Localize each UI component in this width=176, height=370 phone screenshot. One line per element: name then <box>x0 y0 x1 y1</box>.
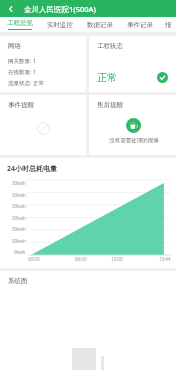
button[interactable]: 事件记录 <box>120 17 160 32</box>
staticText: 00:00 <box>28 256 40 262</box>
staticText: 事件提醒 <box>8 101 34 109</box>
staticText: 12:00 <box>111 256 123 262</box>
staticText: 流量状态: 正常 <box>8 79 44 87</box>
staticText: 事件记录 <box>127 21 153 29</box>
staticText: 30kwh <box>12 226 26 232</box>
staticText: 30kwh <box>12 192 26 198</box>
staticText: 15:44 <box>159 256 171 262</box>
staticText: 06:00 <box>75 256 87 262</box>
staticText: 正常 <box>97 71 117 84</box>
staticText: 没有需要处理的报修 <box>109 137 159 144</box>
button[interactable]: 网络 <box>0 36 86 92</box>
staticText: 30kwh <box>12 215 26 221</box>
staticText: 售后提醒 <box>97 101 123 109</box>
button[interactable]: 事件提醒 <box>0 95 86 155</box>
staticText: 在线数量: 1 <box>8 68 37 76</box>
staticText: 24小时总耗电量 <box>7 164 58 174</box>
button[interactable]: 工程总览 <box>0 17 40 32</box>
button[interactable]: Back <box>0 0 22 17</box>
staticText: 数据记录 <box>87 21 113 29</box>
staticText: 网关数量: 1 <box>8 57 37 65</box>
staticText: 工程状态 <box>97 42 123 50</box>
button[interactable]: 系统图 <box>0 271 176 370</box>
staticText: 网络 <box>8 42 21 50</box>
staticText: 30kwh <box>12 203 26 209</box>
staticText: 金川人民医院1(500A) <box>24 4 96 14</box>
button[interactable]: 报 <box>160 17 176 32</box>
staticText: 工程总览 <box>7 19 33 27</box>
button[interactable]: 数据记录 <box>80 17 120 32</box>
staticText: 实时监控 <box>47 21 73 29</box>
staticText: 系统图 <box>8 277 28 285</box>
button[interactable]: 工程状态 <box>89 36 176 92</box>
staticText: 30kwh <box>12 238 26 244</box>
button[interactable]: 实时监控 <box>40 17 80 32</box>
staticText: 报 <box>165 21 172 29</box>
staticText: 0kwh <box>14 249 26 255</box>
staticText: 30kwh <box>12 180 26 186</box>
button[interactable]: 售后提醒 <box>89 95 176 155</box>
